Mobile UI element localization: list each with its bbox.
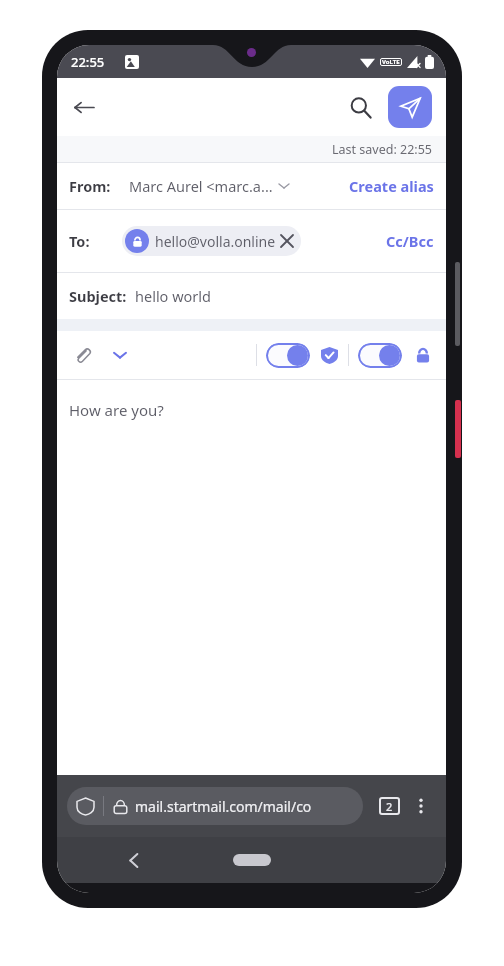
button[interactable]: Create alias — [349, 176, 434, 196]
button[interactable]: Send — [388, 86, 432, 128]
staticText: To: — [69, 231, 90, 251]
button[interactable]: Toggle — [266, 343, 310, 368]
button[interactable]: Back — [65, 88, 103, 126]
button[interactable]: Back — [117, 843, 151, 877]
staticText: hello@volla.online — [155, 232, 276, 251]
button[interactable]: mail.startmail.com/mail/co — [67, 787, 363, 825]
staticText: Subject: — [69, 286, 127, 306]
button[interactable]: Home — [233, 854, 271, 866]
staticText: hello world — [135, 286, 211, 306]
button[interactable]: hello@volla.online — [125, 226, 293, 256]
staticText: From: — [69, 176, 111, 196]
button[interactable]: Attach — [69, 342, 95, 368]
button[interactable]: Tabs — [374, 791, 404, 821]
staticText: Cc/Bcc — [386, 231, 434, 251]
button[interactable]: Subject: — [57, 273, 446, 319]
button[interactable]: Search — [340, 87, 380, 127]
staticText: Last saved: 22:55 — [332, 141, 432, 158]
staticText: VoLTE — [382, 58, 400, 66]
button[interactable]: Encrypted — [412, 344, 434, 366]
button[interactable]: More — [406, 791, 436, 821]
button[interactable]: From: — [57, 163, 446, 209]
staticText: Create alias — [349, 176, 434, 196]
staticText: 22:55 — [71, 53, 105, 71]
staticText: Marc Aurel <marc.a... — [129, 176, 273, 196]
staticText: mail.startmail.com/mail/co — [135, 797, 312, 816]
staticText: How are you? — [69, 400, 164, 420]
staticText: 2 — [386, 799, 393, 814]
button[interactable]: Signed — [318, 344, 340, 366]
button[interactable]: More options — [107, 342, 133, 368]
button[interactable]: To: — [57, 210, 446, 272]
button[interactable]: Cc/Bcc — [386, 231, 434, 251]
button[interactable]: Toggle — [358, 343, 402, 368]
